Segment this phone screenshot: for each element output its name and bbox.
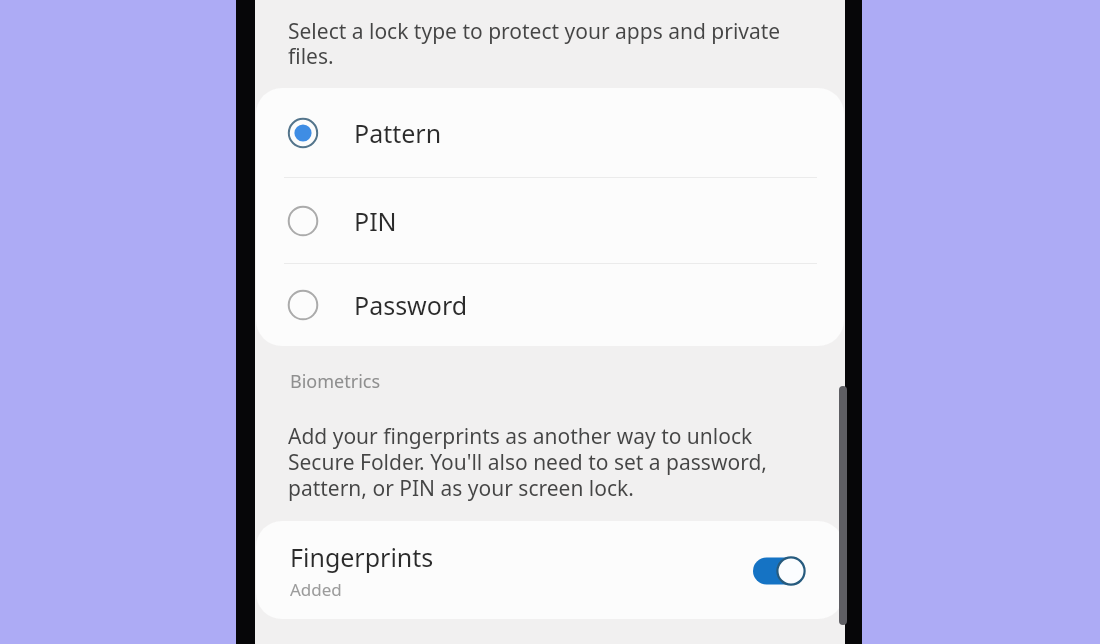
staticText: Biometrics <box>290 369 381 394</box>
staticText: Password <box>354 288 468 322</box>
staticText: Select a lock type to protect your apps … <box>288 17 781 70</box>
staticText: Added <box>290 578 342 601</box>
button[interactable]: PIN <box>256 178 844 263</box>
staticText: Pattern <box>354 116 442 150</box>
button[interactable]: Fingerprints <box>256 521 844 619</box>
staticText: Fingerprints <box>290 540 434 574</box>
staticText: Add your fingerprints as another way to … <box>288 422 767 503</box>
button[interactable]: Pattern <box>256 88 844 177</box>
button[interactable] <box>753 555 807 587</box>
staticText: PIN <box>354 204 397 238</box>
button[interactable]: Password <box>256 264 844 346</box>
